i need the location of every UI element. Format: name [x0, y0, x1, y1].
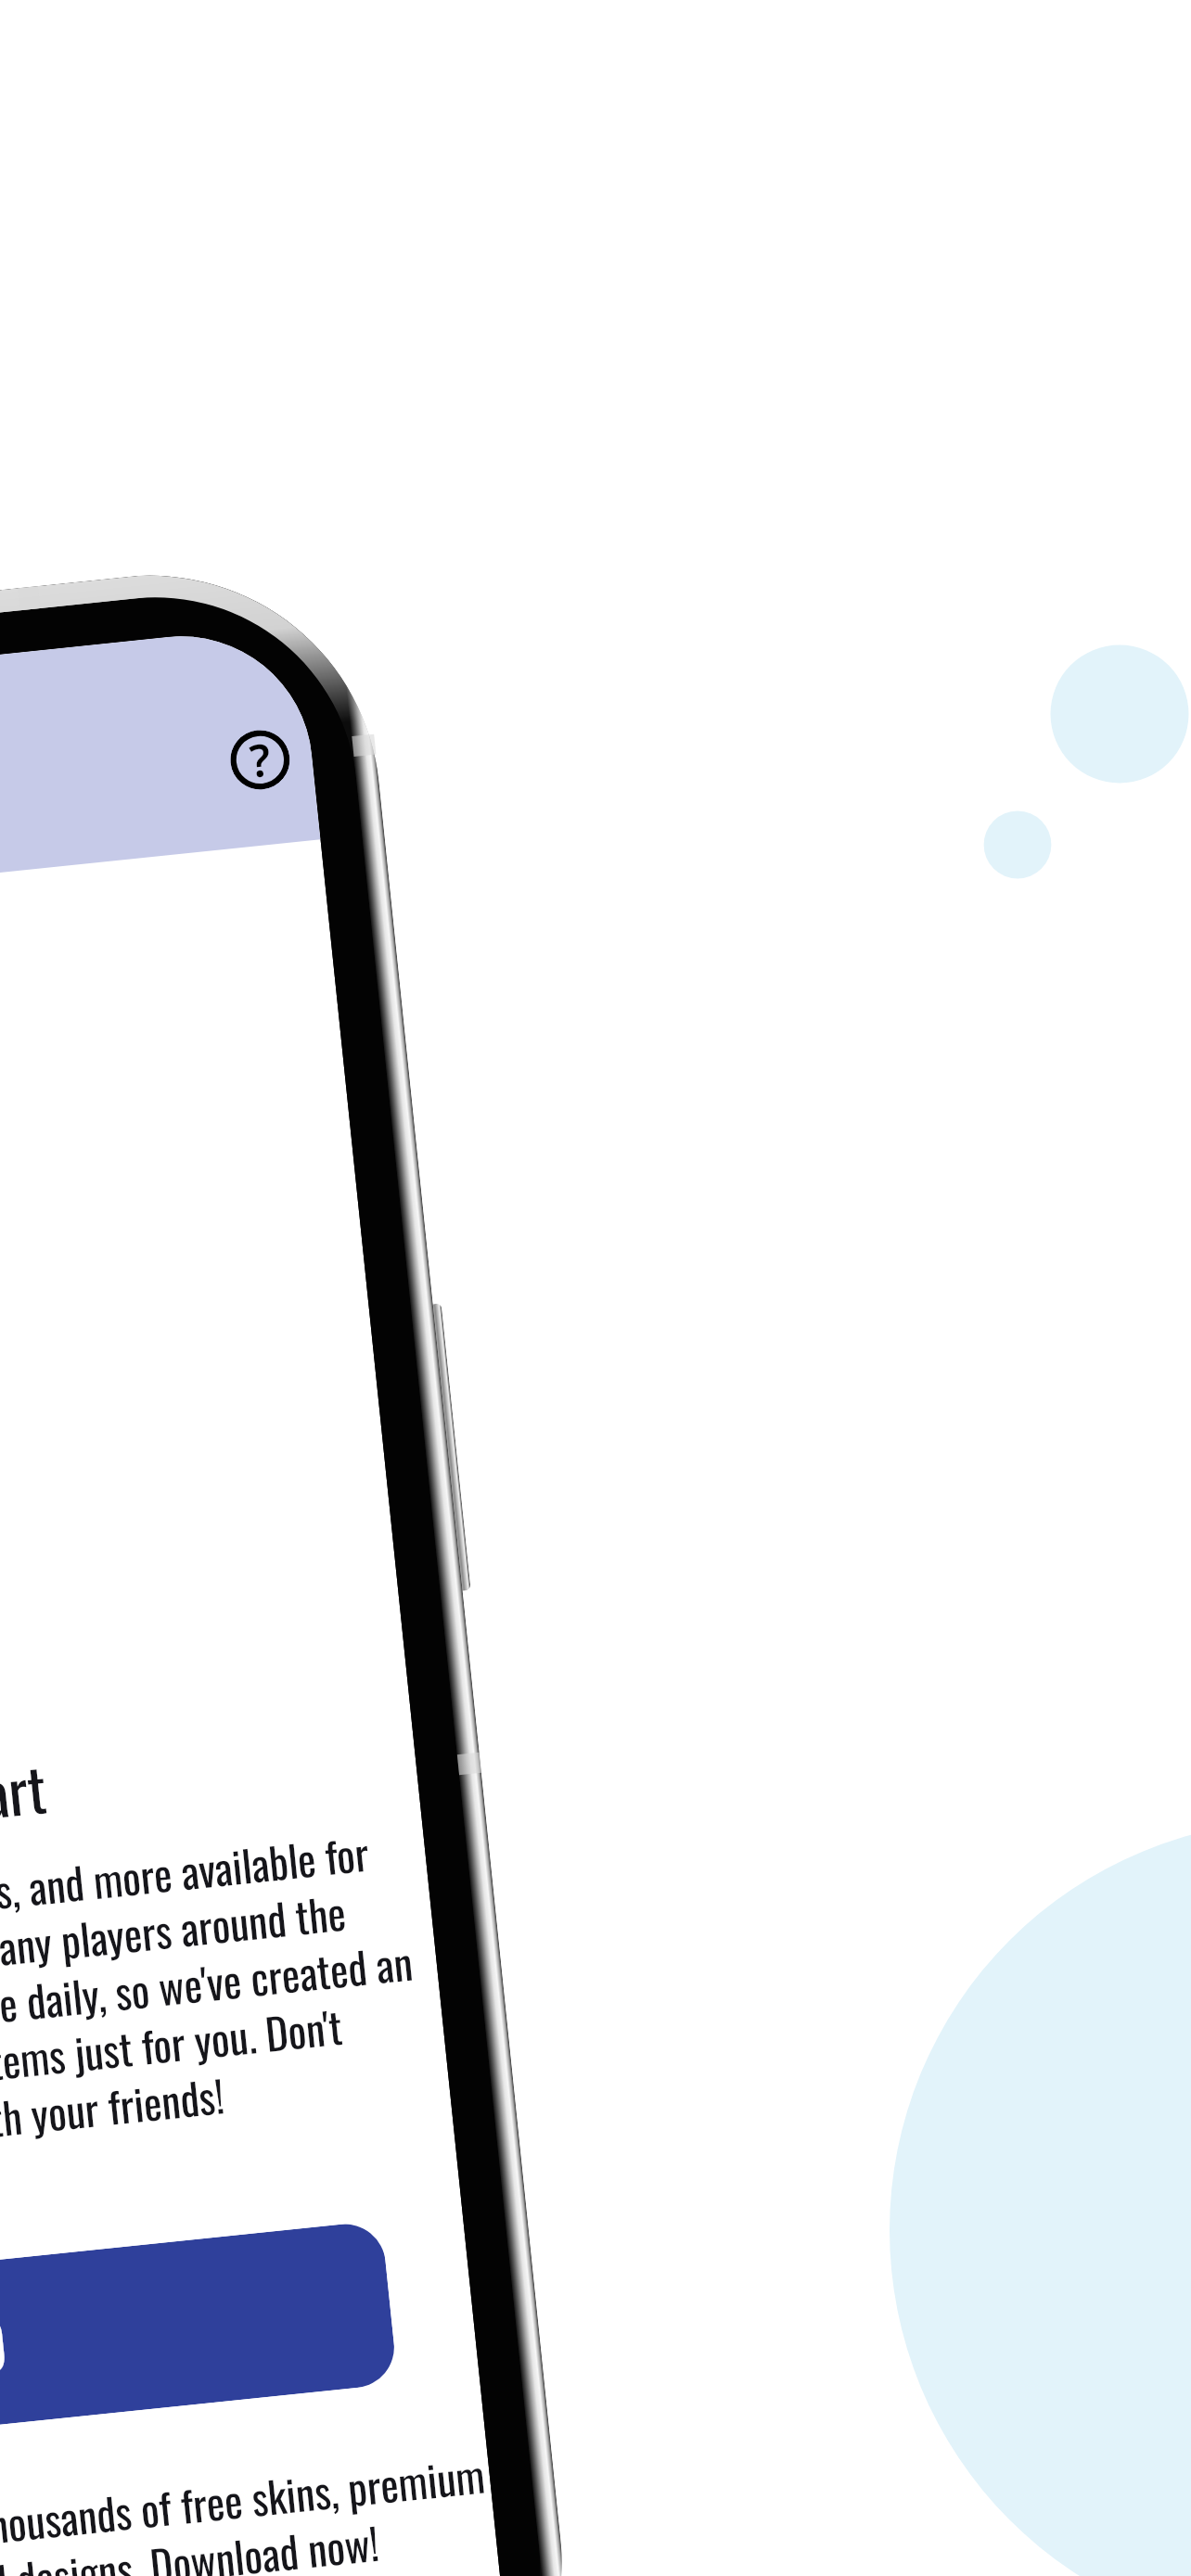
button[interactable]: Help — [228, 727, 293, 792]
staticText: Get access to thousands of free skins, p… — [0, 2442, 498, 2576]
staticText: DOWNLOAD — [0, 2292, 12, 2418]
staticText: ? — [247, 729, 274, 789]
button[interactable]: DOWNLOAD — [0, 2220, 398, 2450]
staticText: There are skins, pets, and more availabl… — [0, 1814, 451, 2177]
staticText: Let's start — [0, 1743, 51, 1852]
